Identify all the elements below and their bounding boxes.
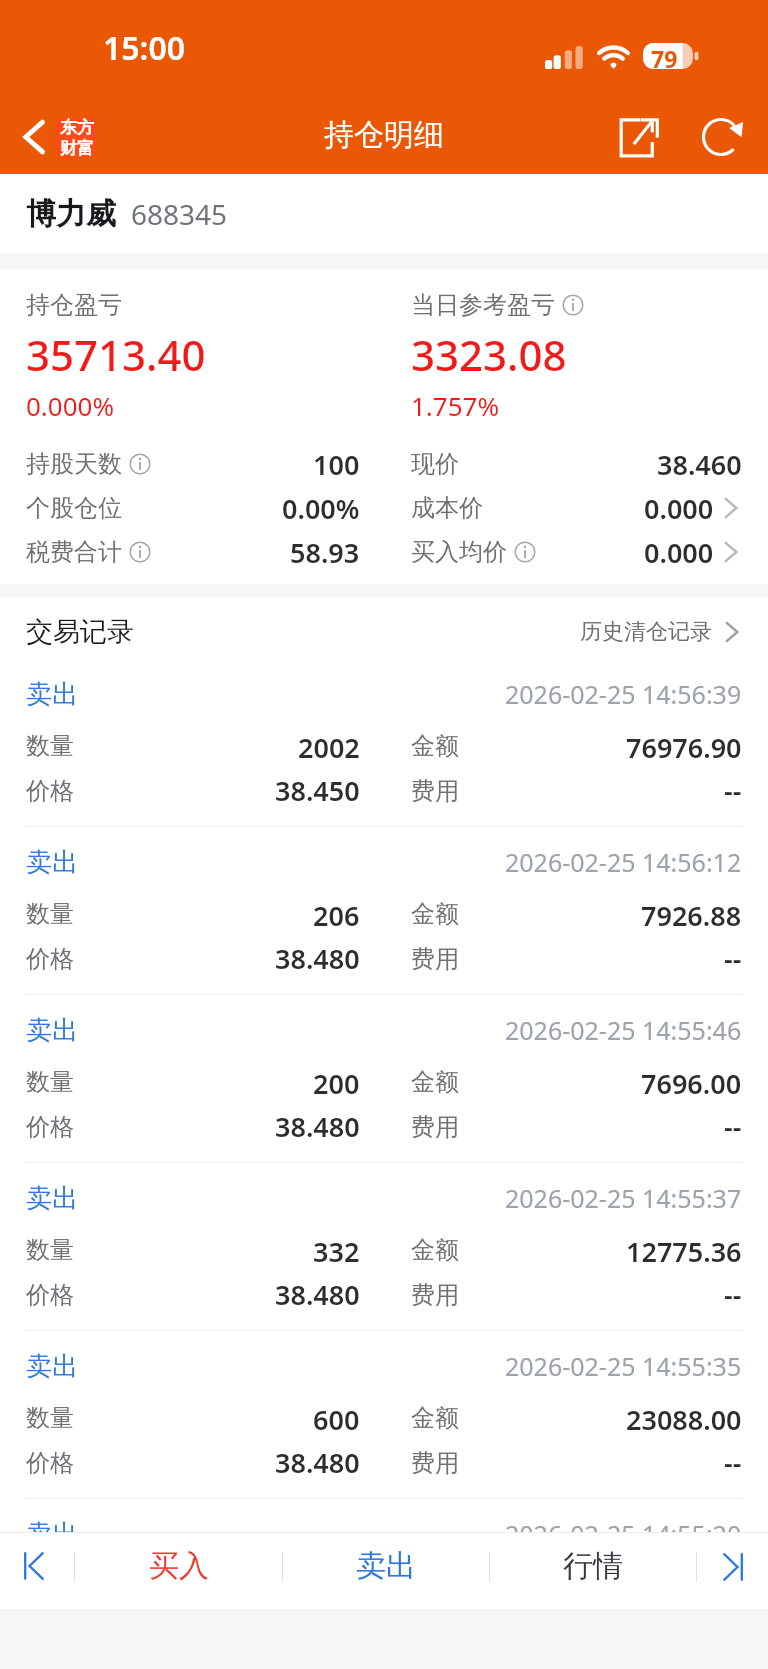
staticText: 206 <box>313 897 360 931</box>
staticText: 卖出 <box>26 1014 78 1047</box>
staticText: 79 <box>651 43 678 69</box>
staticText: 交易记录 <box>26 615 134 649</box>
button[interactable]: First page <box>0 1533 74 1609</box>
button[interactable]: 卖出 <box>0 1498 768 1532</box>
staticText: 38.480 <box>275 1108 360 1145</box>
button[interactable]: 卖出 <box>283 1533 489 1609</box>
staticText: 38.480 <box>275 1276 360 1313</box>
staticText: 持仓明细 <box>324 116 444 154</box>
staticText: 3323.08 <box>411 326 567 382</box>
staticText: 2026-02-25 14:55:20 <box>505 1517 742 1532</box>
staticText: 100 <box>313 446 360 483</box>
staticText: 财富 <box>60 138 94 158</box>
staticText: 0.000 <box>644 490 714 527</box>
staticText: -- <box>724 940 742 977</box>
staticText: 2026-02-25 14:55:35 <box>505 1349 742 1383</box>
staticText: 数量 <box>26 1067 74 1097</box>
staticText: 数量 <box>26 731 74 761</box>
staticText: 博力威 <box>26 195 116 233</box>
staticText: 2002 <box>298 729 360 763</box>
staticText: 卖出 <box>26 1518 78 1532</box>
staticText: 买入均价 <box>411 537 507 567</box>
staticText: 价格 <box>26 1448 74 1478</box>
staticText: 2026-02-25 14:55:37 <box>505 1181 742 1215</box>
staticText: 7926.88 <box>641 897 742 931</box>
staticText: 费用 <box>411 1112 459 1142</box>
staticText: 卖出 <box>26 678 78 711</box>
button[interactable]: 买入 <box>75 1533 282 1609</box>
button[interactable]: 卖出 <box>0 826 768 994</box>
staticText: 金额 <box>411 899 459 929</box>
staticText: 持仓盈亏 <box>26 290 122 320</box>
button[interactable]: Refresh <box>692 96 750 174</box>
staticText: 价格 <box>26 944 74 974</box>
staticText: 历史清仓记录 <box>580 618 712 646</box>
staticText: 金额 <box>411 1067 459 1097</box>
staticText: 0.000 <box>644 534 714 571</box>
staticText: 金额 <box>411 731 459 761</box>
staticText: 2026-02-25 14:56:12 <box>505 845 742 879</box>
staticText: -- <box>724 1108 742 1145</box>
staticText: 76976.90 <box>626 729 742 763</box>
staticText: 卖出 <box>356 1547 416 1585</box>
staticText: 个股仓位 <box>26 493 122 523</box>
staticText: 38.480 <box>275 940 360 977</box>
staticText: 价格 <box>26 776 74 806</box>
button[interactable]: Last page <box>697 1533 768 1609</box>
staticText: 23088.00 <box>626 1401 742 1435</box>
staticText: 12775.36 <box>626 1233 742 1267</box>
staticText: 现价 <box>411 449 459 479</box>
staticText: 200 <box>313 1065 360 1099</box>
button[interactable]: 历史清仓记录 <box>580 601 744 662</box>
button[interactable]: 行情 <box>490 1533 696 1609</box>
staticText: 2026-02-25 14:56:39 <box>505 677 742 711</box>
staticText: 卖出 <box>26 1182 78 1215</box>
button[interactable]: 卖出 <box>0 1162 768 1330</box>
button[interactable]: 卖出 <box>0 1330 768 1498</box>
staticText: 当日参考盈亏 <box>411 290 555 320</box>
staticText: 费用 <box>411 944 459 974</box>
staticText: 0.000% <box>26 388 115 423</box>
staticText: 38.460 <box>657 446 742 483</box>
staticText: 成本价 <box>411 493 483 523</box>
staticText: 数量 <box>26 899 74 929</box>
staticText: 688345 <box>131 195 228 233</box>
button[interactable]: Share <box>609 96 667 174</box>
staticText: 买入 <box>149 1547 209 1585</box>
staticText: 费用 <box>411 1280 459 1310</box>
staticText: 332 <box>313 1233 360 1267</box>
staticText: -- <box>724 1444 742 1481</box>
staticText: 金额 <box>411 1403 459 1433</box>
staticText: -- <box>724 1276 742 1313</box>
staticText: 卖出 <box>26 846 78 879</box>
staticText: 费用 <box>411 776 459 806</box>
button[interactable]: 卖出 <box>0 659 768 826</box>
staticText: -- <box>724 772 742 809</box>
staticText: 东方 <box>60 117 94 138</box>
staticText: 38.450 <box>275 772 360 809</box>
staticText: 数量 <box>26 1403 74 1433</box>
staticText: 15:00 <box>103 26 186 70</box>
staticText: 行情 <box>563 1547 623 1585</box>
staticText: 持股天数 <box>26 449 122 479</box>
staticText: 金额 <box>411 1235 459 1265</box>
button[interactable]: Back <box>14 96 97 174</box>
staticText: 数量 <box>26 1235 74 1265</box>
button[interactable]: 卖出 <box>0 994 768 1162</box>
staticText: 费用 <box>411 1448 459 1478</box>
staticText: 2026-02-25 14:55:46 <box>505 1013 742 1047</box>
staticText: 35713.40 <box>26 326 206 382</box>
staticText: 38.480 <box>275 1444 360 1481</box>
staticText: 600 <box>313 1401 360 1435</box>
staticText: 7696.00 <box>641 1065 742 1099</box>
staticText: 58.93 <box>290 534 360 571</box>
staticText: 1.757% <box>411 388 500 423</box>
staticText: 税费合计 <box>26 537 122 567</box>
staticText: 卖出 <box>26 1350 78 1383</box>
staticText: 价格 <box>26 1280 74 1310</box>
staticText: 0.00% <box>282 490 360 527</box>
staticText: 价格 <box>26 1112 74 1142</box>
